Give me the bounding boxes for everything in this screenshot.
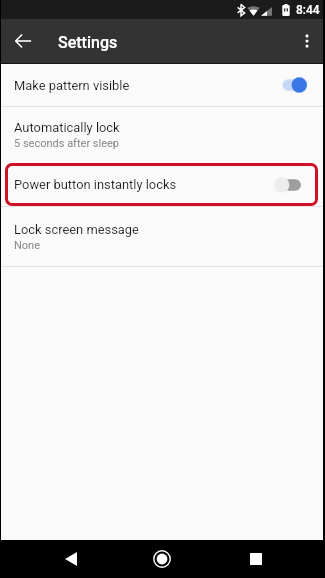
button[interactable]: More options: [291, 19, 323, 63]
button[interactable]: Automatically lock: [1, 107, 323, 163]
button[interactable]: Back: [42, 540, 100, 578]
staticText: Settings: [58, 33, 118, 52]
staticText: Lock screen message: [14, 222, 139, 237]
button[interactable]: Lock screen message: [1, 207, 323, 266]
button[interactable]: Switch on: [274, 74, 307, 96]
button[interactable]: Power button instantly locks: [1, 163, 323, 206]
button[interactable]: Recent apps: [227, 540, 285, 578]
button[interactable]: Make pattern visible: [1, 64, 323, 106]
staticText: 8:44: [296, 3, 320, 17]
button[interactable]: Home: [133, 540, 191, 578]
staticText: Make pattern visible: [14, 78, 130, 93]
staticText: Power button instantly locks: [14, 177, 177, 192]
staticText: Automatically lock: [14, 120, 120, 135]
button[interactable]: Back: [1, 19, 45, 63]
button[interactable]: Switch off: [274, 174, 307, 196]
staticText: 5 seconds after sleep: [14, 137, 120, 150]
staticText: None: [14, 239, 41, 252]
